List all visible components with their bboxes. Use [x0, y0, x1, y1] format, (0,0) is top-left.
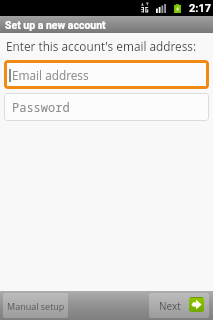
button[interactable]: Email address [4, 60, 209, 89]
staticText: Set up a new account [5, 19, 106, 31]
staticText: Enter this account's email address: [6, 38, 197, 54]
staticText: Password [12, 99, 70, 115]
staticText: Manual setup [7, 300, 65, 312]
button[interactable]: Password [4, 93, 209, 121]
staticText: 2:17 [189, 2, 212, 15]
staticText: Next [159, 299, 181, 313]
button[interactable]: Manual setup [3, 293, 68, 318]
other: Next [189, 297, 204, 312]
staticText: Email address [12, 67, 89, 83]
button[interactable]: Next [149, 293, 209, 318]
